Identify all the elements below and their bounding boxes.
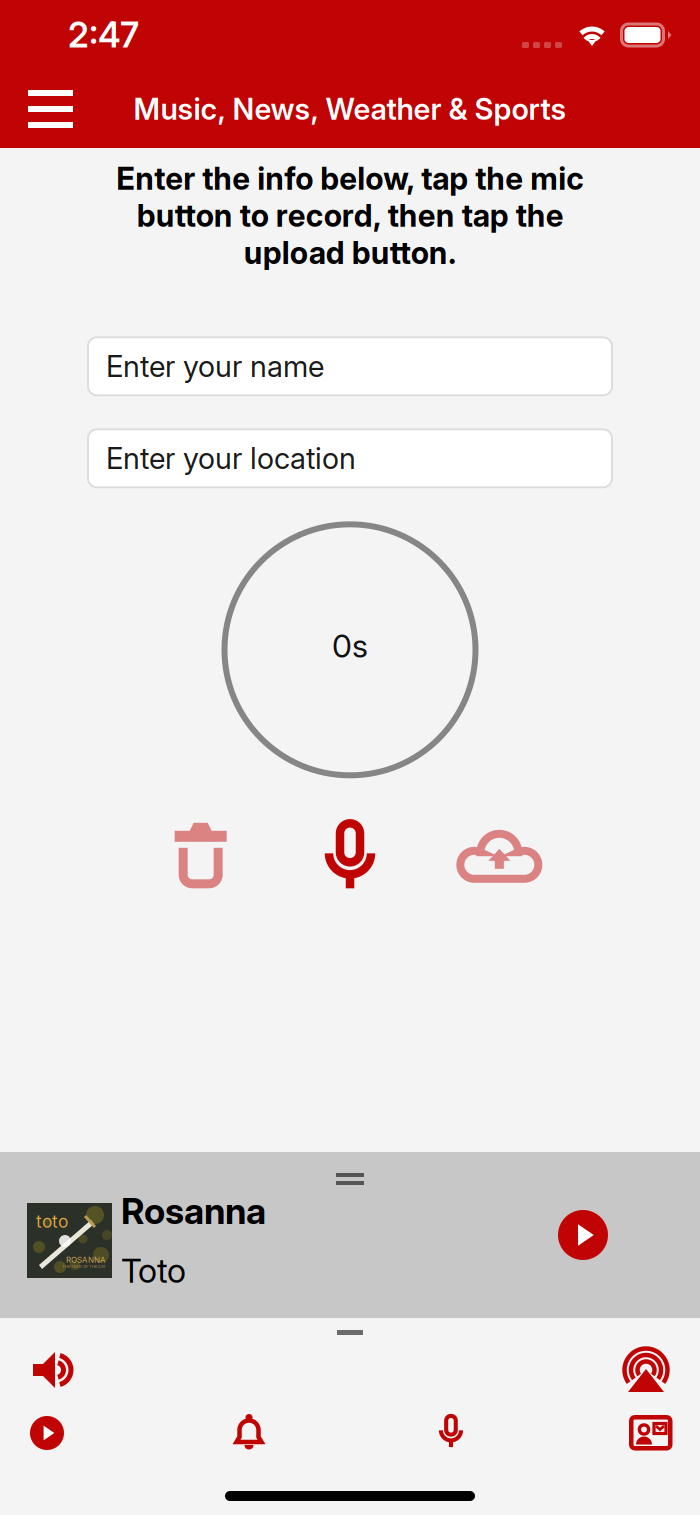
staticText: ROSANNA xyxy=(66,1255,106,1265)
button[interactable]: AirPlay xyxy=(614,1341,678,1399)
button[interactable]: Record xyxy=(275,819,425,890)
button[interactable]: Alerts xyxy=(229,1412,269,1452)
staticText: Enter your name xyxy=(106,349,324,384)
staticText: Enter the info below, tap the mic button… xyxy=(116,160,584,271)
button[interactable]: Enter your name xyxy=(88,337,612,395)
button[interactable]: Enter your location xyxy=(88,429,612,487)
staticText: Enter your location xyxy=(106,441,356,476)
staticText: Toto xyxy=(121,1251,186,1291)
staticText: 0s xyxy=(332,626,368,665)
staticText: toto xyxy=(36,1211,68,1232)
button[interactable]: Contacts xyxy=(623,1413,678,1453)
button[interactable]: Volume xyxy=(23,1346,83,1394)
staticText: 2:47 xyxy=(68,14,139,56)
staticText: THE YEAR OF THE CAT xyxy=(62,1264,106,1269)
button[interactable]: Upload xyxy=(425,825,574,885)
staticText: Music, News, Weather & Sports xyxy=(133,91,566,127)
button[interactable]: Play xyxy=(550,1202,616,1268)
button[interactable]: Menu xyxy=(0,76,95,142)
button[interactable]: Record xyxy=(432,1412,470,1450)
staticText: Rosanna xyxy=(121,1189,266,1233)
button[interactable]: Play xyxy=(24,1413,70,1453)
button[interactable]: Delete recording xyxy=(126,821,275,889)
